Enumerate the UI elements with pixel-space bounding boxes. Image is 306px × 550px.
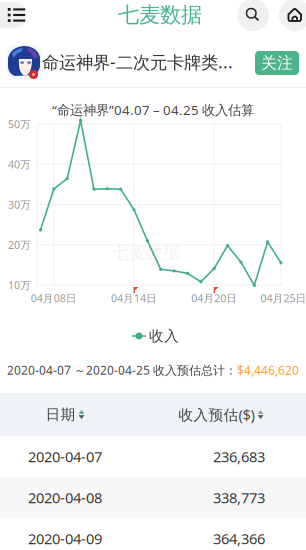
- staticText: 04月25日: [260, 291, 306, 305]
- staticText: 收入预估($): [178, 405, 254, 424]
- staticText: 七麦数据: [118, 2, 202, 28]
- staticText: 338,773: [213, 488, 265, 507]
- staticText: 30万: [8, 197, 31, 212]
- staticText: 收入: [149, 327, 179, 345]
- staticText: 2020-04-09: [28, 529, 102, 548]
- staticText: $4,446,620: [237, 362, 299, 378]
- staticText: 关注: [261, 53, 293, 73]
- button[interactable]: Menu: [0, 2, 27, 28]
- staticText: 236,683: [213, 447, 265, 466]
- staticText: 04月14日: [111, 291, 157, 305]
- staticText: 20万: [8, 238, 31, 252]
- staticText: 命运神界-二次元卡牌类策…: [42, 50, 242, 74]
- button[interactable]: Search: [237, 0, 269, 31]
- staticText: 2020-04-08: [28, 488, 102, 507]
- staticText: “命运神界”04.07 – 04.25 收入估算: [52, 101, 254, 119]
- staticText: 364,366: [213, 529, 265, 548]
- staticText: 七麦数据: [112, 242, 180, 263]
- staticText: 10万: [8, 278, 31, 292]
- staticText: 2020-04-07: [28, 447, 102, 466]
- staticText: 04月08日: [31, 291, 77, 305]
- staticText: 04月20日: [191, 291, 237, 305]
- staticText: 日期: [45, 405, 75, 423]
- staticText: 2020-04-07 ～2020-04-25 收入预估总计：: [7, 362, 237, 378]
- button[interactable]: 关注: [255, 51, 299, 75]
- staticText: 40万: [8, 157, 31, 171]
- staticText: 50万: [8, 117, 31, 131]
- button[interactable]: Home: [279, 0, 306, 31]
